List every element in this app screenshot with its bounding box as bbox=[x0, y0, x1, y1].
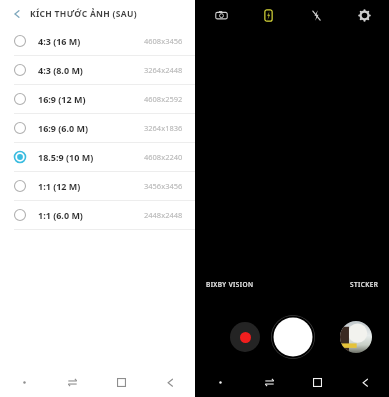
button[interactable]: Recents bbox=[97, 367, 146, 397]
staticText: 16:9 (12 M) bbox=[38, 93, 86, 105]
button[interactable]: Switch bbox=[48, 367, 97, 397]
button[interactable]: Switch camera bbox=[210, 4, 232, 26]
button[interactable]: Flash mode bbox=[257, 4, 279, 26]
button[interactable]: Back bbox=[341, 367, 389, 397]
button[interactable]: 1:1 (12 M) bbox=[0, 172, 195, 200]
button[interactable]: Flash off bbox=[305, 4, 327, 26]
staticText: 16:9 (6.0 M) bbox=[38, 122, 89, 134]
button[interactable]: 1:1 (6.0 M) bbox=[0, 201, 195, 229]
staticText: 1:1 (6.0 M) bbox=[38, 209, 83, 221]
staticText: 2448x2448 bbox=[144, 210, 183, 220]
button[interactable]: Back bbox=[0, 0, 195, 27]
staticText: 4608x2240 bbox=[144, 152, 183, 162]
button[interactable]: Recents bbox=[293, 367, 341, 397]
button[interactable]: BIXBY VISION bbox=[206, 280, 254, 289]
button[interactable]: Take photo bbox=[271, 315, 315, 359]
button[interactable]: Menu bbox=[196, 367, 245, 397]
button[interactable]: Gallery bbox=[340, 321, 372, 353]
staticText: KÍCH THƯỚC ẢNH (SAU) bbox=[30, 8, 137, 20]
button[interactable]: Switch bbox=[245, 367, 293, 397]
button[interactable]: Menu bbox=[0, 367, 48, 397]
staticText: 4:3 (16 M) bbox=[38, 35, 81, 47]
staticText: 1:1 (12 M) bbox=[38, 180, 81, 192]
staticText: 18.5:9 (10 M) bbox=[38, 151, 94, 163]
staticText: 3456x3456 bbox=[144, 181, 183, 191]
button[interactable]: Back bbox=[146, 367, 195, 397]
staticText: BIXBY VISION bbox=[206, 280, 254, 289]
button[interactable]: STICKER bbox=[350, 280, 379, 289]
staticText: 3264x1836 bbox=[144, 123, 183, 133]
button[interactable]: 16:9 (12 M) bbox=[0, 85, 195, 113]
staticText: 4:3 (8.0 M) bbox=[38, 64, 83, 76]
other: Back bbox=[11, 8, 23, 20]
staticText: STICKER bbox=[350, 280, 379, 289]
staticText: 4608x3456 bbox=[144, 36, 183, 46]
button[interactable]: Record video bbox=[230, 322, 260, 352]
staticText: 4608x2592 bbox=[144, 94, 183, 104]
button[interactable]: Settings bbox=[353, 4, 375, 26]
button[interactable]: 4:3 (16 M) bbox=[0, 27, 195, 55]
button[interactable]: 18.5:9 (10 M) bbox=[0, 143, 195, 171]
staticText: 3264x2448 bbox=[144, 65, 183, 75]
button[interactable]: 4:3 (8.0 M) bbox=[0, 56, 195, 84]
button[interactable]: 16:9 (6.0 M) bbox=[0, 114, 195, 142]
